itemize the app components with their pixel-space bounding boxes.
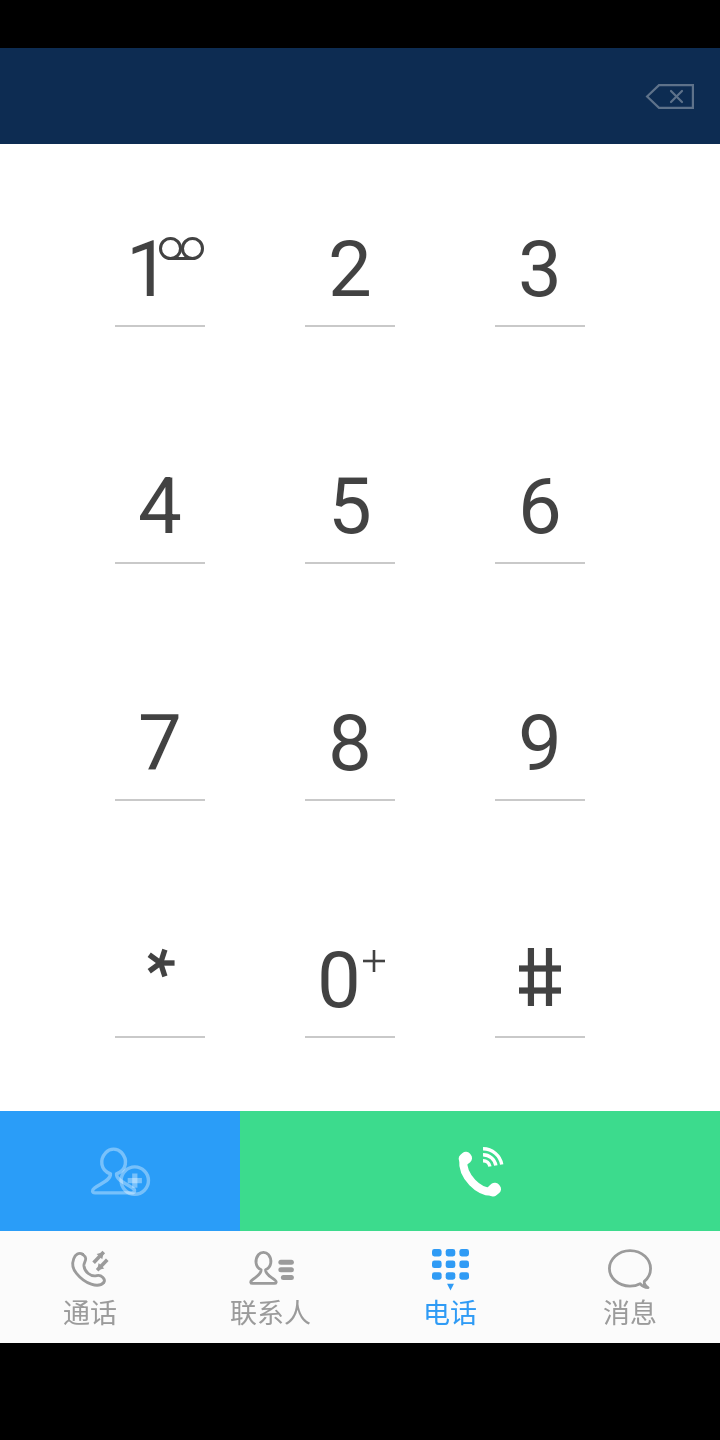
staticText: 6 [518, 461, 562, 541]
staticText: 9 [518, 698, 562, 778]
button[interactable]: 6 [445, 381, 635, 618]
staticText: 1 [126, 224, 170, 304]
button[interactable]: 9 [445, 618, 635, 855]
button[interactable]: 2 [255, 144, 445, 381]
button[interactable]: 0 [255, 855, 445, 1092]
button[interactable]: 4 [65, 381, 255, 618]
button[interactable] [445, 855, 635, 1092]
button[interactable]: 联系人 [180, 1231, 360, 1343]
button[interactable] [65, 855, 255, 1092]
button[interactable]: Delete [622, 48, 718, 144]
staticText: 4 [138, 461, 182, 541]
button[interactable]: 消息 [540, 1231, 720, 1343]
button[interactable]: 7 [65, 618, 255, 855]
button[interactable]: 3 [445, 144, 635, 381]
button[interactable]: 8 [255, 618, 445, 855]
staticText: 消息 [603, 1292, 657, 1331]
staticText: 0 [317, 935, 361, 1015]
staticText: 电话 [423, 1292, 477, 1331]
button[interactable]: 通话 [0, 1231, 180, 1343]
staticText: 5 [328, 461, 372, 541]
button[interactable]: Add contact [0, 1111, 240, 1231]
staticText: 2 [328, 224, 372, 304]
staticText: 7 [138, 698, 182, 778]
staticText: 8 [328, 698, 372, 778]
staticText: 联系人 [230, 1292, 311, 1331]
button[interactable]: 1 [65, 144, 255, 381]
button[interactable]: 5 [255, 381, 445, 618]
staticText: 通话 [63, 1292, 117, 1331]
button[interactable]: 电话 [360, 1231, 540, 1343]
staticText: 3 [518, 224, 562, 304]
button[interactable]: Call [240, 1111, 720, 1231]
